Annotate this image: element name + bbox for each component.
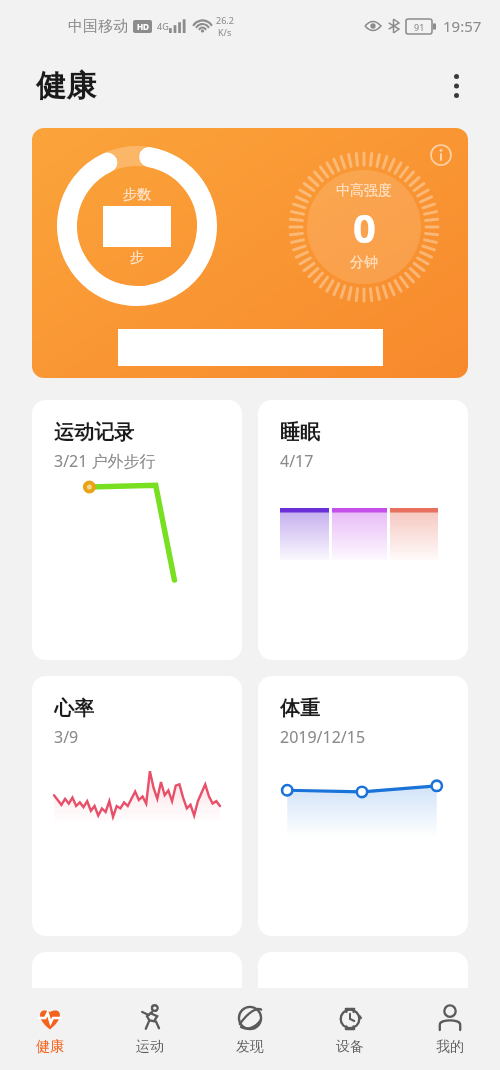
staticText: 运动记录 (54, 420, 134, 445)
button[interactable]: 我的 (400, 988, 500, 1070)
button[interactable]: 设备 (300, 988, 400, 1070)
staticText: 健康 (36, 67, 96, 105)
button[interactable]: 心率 (32, 676, 242, 936)
staticText: 分钟 (350, 254, 378, 272)
staticText: 91 (414, 21, 425, 33)
staticText: 中国移动 (68, 17, 128, 36)
button[interactable]: 运动记录 (32, 400, 242, 660)
staticText: 步 (130, 249, 144, 267)
staticText: 运动 (136, 1038, 164, 1056)
button[interactable] (258, 952, 468, 1012)
staticText: 健康 (36, 1038, 64, 1056)
button[interactable]: 睡眠 (258, 400, 468, 660)
staticText: 体重 (280, 696, 320, 721)
staticText: 心率 (54, 696, 94, 721)
staticText: 步数 (123, 186, 151, 204)
staticText: 19:57 (443, 16, 482, 36)
staticText: 我的 (436, 1038, 464, 1056)
button[interactable]: 健康 (0, 988, 100, 1070)
staticText: 睡眠 (280, 420, 320, 445)
button[interactable] (32, 952, 242, 1012)
staticText: 发现 (236, 1038, 264, 1056)
button[interactable]: 运动 (100, 988, 200, 1070)
staticText: 3/9 (54, 726, 79, 748)
staticText: K/s (218, 26, 232, 38)
staticText: 2019/12/15 (280, 726, 366, 748)
staticText: 4/17 (280, 450, 314, 472)
staticText: 0 (353, 200, 376, 254)
staticText: 中高强度 (336, 182, 392, 200)
staticText: 4G (157, 20, 169, 32)
staticText: 26.2 (216, 14, 234, 26)
staticText: 设备 (336, 1038, 364, 1056)
button[interactable]: More options (436, 66, 476, 106)
staticText: 3/21 户外步行 (54, 450, 156, 472)
staticText: HD (137, 21, 149, 32)
button[interactable]: 发现 (200, 988, 300, 1070)
button[interactable]: Information (424, 138, 458, 172)
button[interactable]: 体重 (258, 676, 468, 936)
button[interactable]: Information (32, 128, 468, 378)
